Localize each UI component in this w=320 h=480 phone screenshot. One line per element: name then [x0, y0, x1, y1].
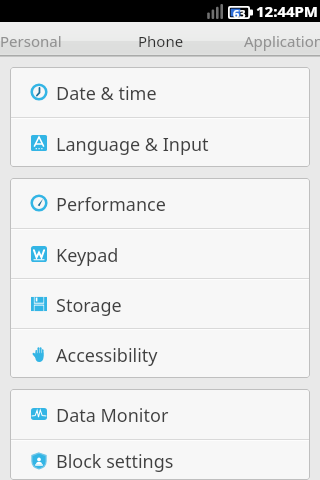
staticText: Storage	[56, 293, 122, 318]
button[interactable]: Performance	[10, 178, 310, 228]
button[interactable]: Personal	[0, 22, 96, 55]
staticText: Accessibility	[56, 343, 158, 368]
staticText: Phone	[138, 31, 184, 51]
staticText: Keypad	[56, 243, 119, 268]
button[interactable]: Storage	[10, 280, 310, 328]
staticText: Performance	[56, 192, 166, 217]
staticText: Data Monitor	[56, 403, 169, 428]
staticText: Personal	[0, 31, 62, 51]
staticText: Block settings	[56, 449, 174, 474]
button[interactable]: Data Monitor	[10, 389, 310, 439]
button[interactable]: Block settings	[10, 441, 310, 480]
staticText: 12:44PM	[256, 1, 318, 21]
button[interactable]: Applications	[222, 22, 320, 55]
button[interactable]: Keypad	[10, 230, 310, 278]
staticText: Date & time	[56, 81, 157, 106]
button[interactable]: Accessibility	[10, 330, 310, 378]
button[interactable]: Date & time	[10, 67, 310, 117]
staticText: Applications	[244, 31, 320, 51]
staticText: Language & Input	[56, 132, 209, 157]
staticText: 63	[233, 6, 246, 19]
button[interactable]: Phone	[96, 22, 226, 55]
button[interactable]: Language & Input	[10, 119, 310, 167]
